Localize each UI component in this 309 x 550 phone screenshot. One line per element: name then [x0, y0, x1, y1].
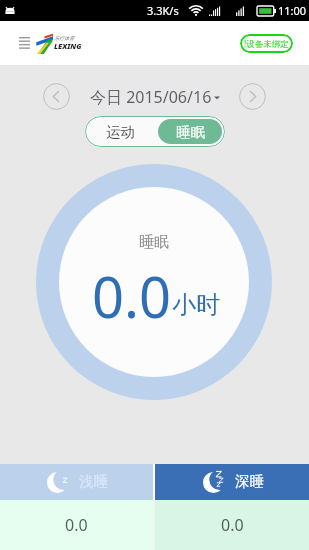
staticText: 小时: [172, 290, 220, 320]
staticText: 浅睡: [79, 472, 108, 490]
staticText: 3.3K/s: [147, 3, 179, 18]
staticText: 0.0: [65, 514, 88, 536]
button[interactable]: !设备未绑定: [240, 34, 293, 53]
staticText: 0.0: [221, 514, 244, 536]
button[interactable]: 深睡: [155, 464, 309, 500]
button[interactable]: Next day: [239, 83, 266, 110]
button[interactable]: Previous day: [43, 83, 70, 110]
staticText: 今日 2015/06/16: [90, 86, 212, 108]
staticText: 睡眠: [139, 233, 169, 252]
staticText: LEXING: [54, 41, 82, 51]
staticText: 11:00: [278, 3, 307, 18]
staticText: 乐行体育: [54, 35, 74, 41]
button[interactable]: 睡眠: [158, 119, 222, 144]
staticText: 深睡: [235, 472, 264, 490]
staticText: !设备未绑定: [244, 38, 289, 50]
staticText: 0.0: [92, 258, 172, 334]
button[interactable]: Menu: [12, 31, 36, 55]
button[interactable]: 运动: [85, 116, 155, 147]
staticText: 睡眠: [176, 123, 205, 141]
button[interactable]: 浅睡: [0, 464, 153, 500]
staticText: 运动: [106, 123, 135, 141]
